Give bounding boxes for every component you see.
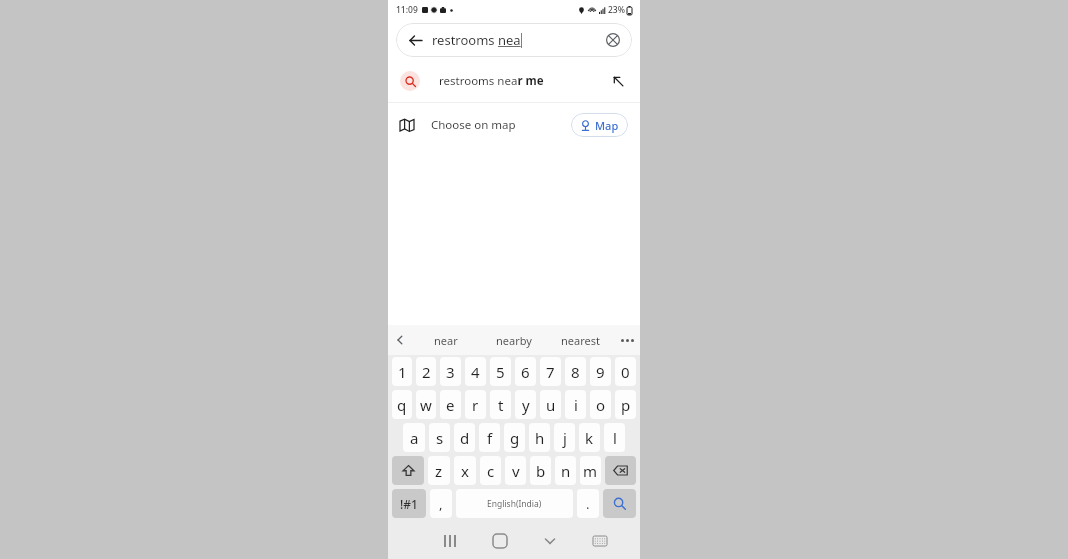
button[interactable]: f (479, 423, 500, 452)
button[interactable]: nearest (547, 325, 614, 355)
staticText: 5 (496, 362, 505, 382)
staticText: v (512, 461, 520, 481)
button[interactable]: More (614, 325, 640, 355)
staticText: e (446, 395, 455, 415)
staticText: , (439, 495, 443, 513)
staticText: 1 (398, 362, 407, 382)
button[interactable]: , (430, 489, 452, 518)
staticText: h (535, 428, 545, 448)
button[interactable]: Search (603, 489, 636, 518)
staticText: c (487, 461, 495, 481)
staticText: d (460, 428, 470, 448)
button[interactable]: p (615, 390, 636, 419)
button[interactable]: Map (571, 113, 628, 137)
button[interactable]: 9 (590, 357, 611, 386)
button[interactable]: 2 (416, 357, 436, 386)
staticText: s (436, 428, 444, 448)
button[interactable]: Shift (392, 456, 424, 485)
button[interactable]: Backspace (605, 456, 636, 485)
staticText: n (561, 461, 571, 481)
staticText: m (583, 461, 598, 481)
staticText: 8 (571, 362, 580, 382)
button[interactable]: !#1 (392, 489, 426, 518)
staticText: q (397, 395, 407, 415)
staticText: . (586, 495, 590, 513)
staticText: nearest (561, 333, 600, 348)
button[interactable]: . (577, 489, 599, 518)
button[interactable]: z (428, 456, 450, 485)
button[interactable]: 6 (515, 357, 536, 386)
staticText: 11:09 (396, 4, 418, 16)
button[interactable]: 4 (465, 357, 486, 386)
button[interactable]: s (429, 423, 450, 452)
staticText: g (510, 428, 520, 448)
button[interactable]: x (454, 456, 476, 485)
staticText: English(India) (487, 498, 542, 510)
staticText: t (498, 395, 504, 415)
staticText: x (461, 461, 469, 481)
staticText: 6 (521, 362, 530, 382)
button[interactable]: Home (475, 523, 525, 559)
button[interactable]: b (530, 456, 551, 485)
button[interactable]: Choose on map (388, 103, 640, 146)
button[interactable]: t (490, 390, 511, 419)
staticText: 4 (471, 362, 480, 382)
button[interactable]: y (515, 390, 536, 419)
staticText: z (435, 461, 443, 481)
button[interactable]: r (465, 390, 486, 419)
button[interactable]: m (580, 456, 601, 485)
button[interactable]: Hide keyboard (525, 523, 575, 559)
button[interactable]: a (403, 423, 425, 452)
staticText: near (434, 333, 458, 348)
staticText: 2 (422, 362, 431, 382)
staticText: r (472, 395, 479, 415)
staticText: restrooms near me (439, 73, 544, 89)
button[interactable]: d (454, 423, 475, 452)
button[interactable]: Clear (602, 29, 624, 51)
button[interactable]: e (440, 390, 461, 419)
button[interactable]: 8 (565, 357, 586, 386)
button[interactable]: g (504, 423, 525, 452)
button[interactable]: near (412, 325, 480, 355)
staticText: l (613, 428, 617, 448)
staticText: u (546, 395, 556, 415)
button[interactable]: Recents (424, 523, 475, 559)
staticText: k (585, 428, 594, 448)
button[interactable]: o (590, 390, 611, 419)
button[interactable]: n (555, 456, 576, 485)
button[interactable]: 3 (440, 357, 461, 386)
staticText: a (410, 428, 419, 448)
button[interactable]: u (540, 390, 561, 419)
button[interactable]: q (392, 390, 412, 419)
staticText: y (522, 395, 530, 415)
staticText: i (574, 395, 578, 415)
staticText: j (563, 428, 567, 448)
button[interactable]: 1 (392, 357, 412, 386)
button[interactable]: k (579, 423, 600, 452)
button[interactable]: Change keyboard (575, 523, 625, 559)
button[interactable]: l (604, 423, 625, 452)
button[interactable]: 7 (540, 357, 561, 386)
button[interactable]: Insert (608, 71, 628, 91)
staticText: restrooms nea (432, 31, 521, 49)
button[interactable]: j (554, 423, 575, 452)
button[interactable]: c (480, 456, 501, 485)
button[interactable]: 0 (615, 357, 636, 386)
staticText: w (420, 395, 432, 415)
button[interactable]: i (565, 390, 586, 419)
staticText: Map (595, 118, 619, 133)
button[interactable]: w (416, 390, 436, 419)
staticText: 3 (446, 362, 455, 382)
staticText: 23% (608, 4, 625, 16)
button[interactable]: English(India) (456, 489, 573, 518)
staticText: 0 (621, 362, 630, 382)
button[interactable]: nearby (480, 325, 547, 355)
button[interactable]: v (505, 456, 526, 485)
button[interactable]: 5 (490, 357, 511, 386)
button[interactable]: h (529, 423, 550, 452)
staticText: !#1 (400, 496, 418, 512)
button[interactable]: Back (404, 29, 426, 51)
staticText: o (596, 395, 606, 415)
button[interactable]: Previous (388, 325, 412, 355)
button[interactable]: restrooms near me (388, 60, 640, 102)
